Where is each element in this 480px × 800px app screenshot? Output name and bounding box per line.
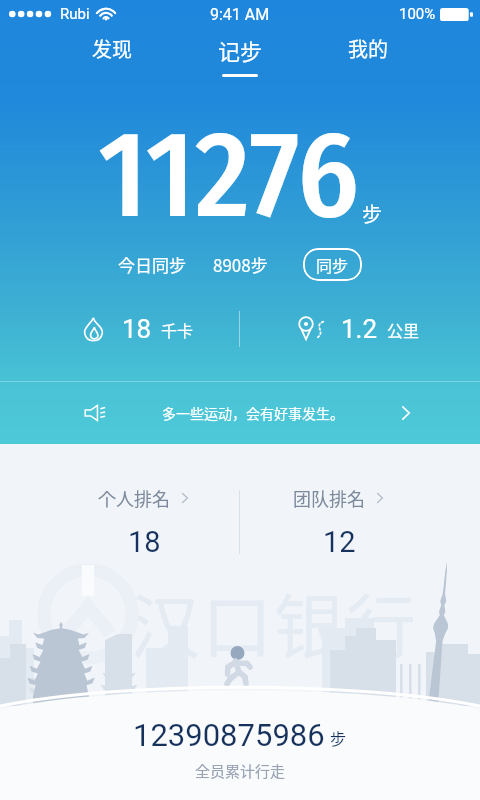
staticText: 同步 xyxy=(316,253,349,276)
button[interactable]: 个人排名 xyxy=(25,485,264,559)
staticText: Rubi xyxy=(60,5,90,23)
button[interactable]: 多一些运动，会有好事发生。 xyxy=(0,382,480,444)
staticText: 个人排名 xyxy=(98,485,170,511)
staticText: 步 xyxy=(362,199,382,228)
staticText: 18 xyxy=(122,314,152,344)
staticText: 9:41 AM xyxy=(210,5,270,24)
staticText: 我的 xyxy=(348,34,388,63)
staticText: 11276 xyxy=(98,103,359,248)
staticText: 公里 xyxy=(387,318,420,341)
staticText: 多一些运动，会有好事发生。 xyxy=(162,403,344,423)
other: Calories xyxy=(83,317,104,341)
other: Distance xyxy=(297,316,331,342)
staticText: 8908步 xyxy=(213,252,268,277)
button[interactable]: 团队排名 xyxy=(219,485,459,559)
button[interactable]: 我的 xyxy=(333,28,403,63)
staticText: 18 xyxy=(128,525,161,559)
staticText: 汉口银行 xyxy=(130,572,418,673)
staticText: 团队排名 xyxy=(293,485,365,511)
staticText: 步 xyxy=(330,726,347,749)
staticText: 记步 xyxy=(218,34,263,66)
staticText: 12390875986 xyxy=(133,717,325,753)
button[interactable]: 发现 xyxy=(77,28,147,63)
staticText: 千卡 xyxy=(161,318,194,341)
staticText: 1.2 xyxy=(341,314,378,344)
button[interactable]: 记步 xyxy=(205,28,275,77)
staticText: 今日同步 xyxy=(118,252,186,277)
staticText: 12 xyxy=(323,525,356,559)
button[interactable]: 同步 xyxy=(303,248,362,281)
staticText: 发现 xyxy=(92,34,132,63)
staticText: 100% xyxy=(399,5,436,23)
staticText: 全员累计行走 xyxy=(195,760,286,782)
